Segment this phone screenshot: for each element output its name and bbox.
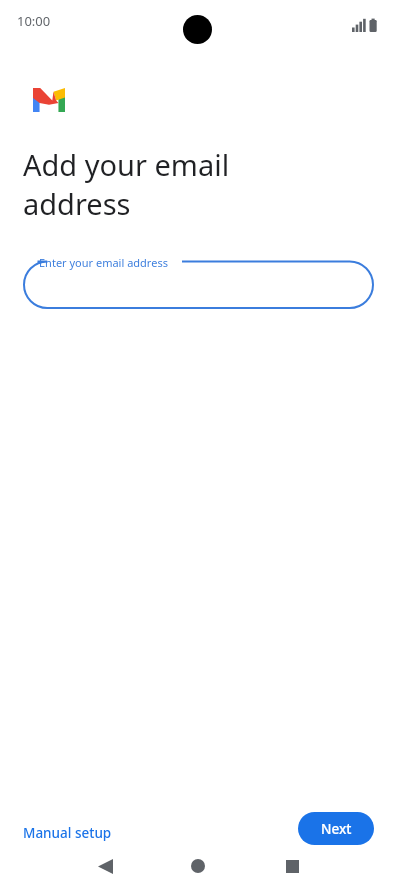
staticText: 10:00 [17,12,51,30]
button[interactable]: Next [298,812,374,845]
button[interactable]: Enter your email address [24,254,373,308]
staticText: Add your email address [23,145,230,223]
staticText: Manual setup [23,824,112,842]
staticText: Enter your email address [39,255,168,270]
staticText: Next [321,820,352,838]
button[interactable]: Back [85,846,125,886]
button[interactable]: Manual setup [23,820,112,846]
button[interactable]: Recent apps [272,846,312,886]
button[interactable]: Home [178,846,218,886]
